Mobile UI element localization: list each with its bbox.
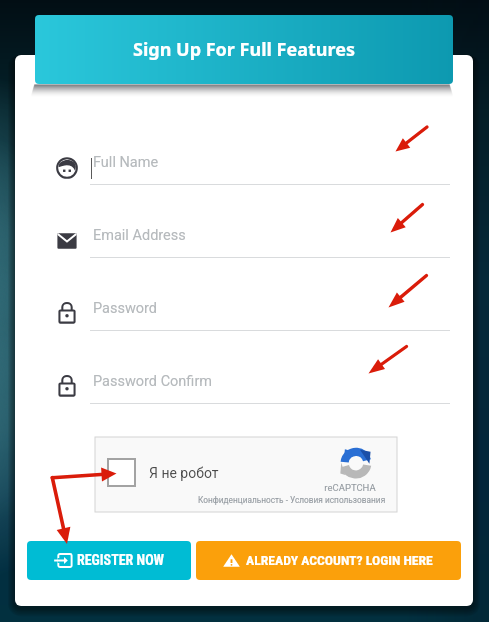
button[interactable]: ALREADY ACCOUNT? LOGIN HERE bbox=[196, 541, 461, 580]
staticText: ALREADY ACCOUNT? LOGIN HERE bbox=[246, 552, 433, 568]
staticText: Password bbox=[93, 300, 158, 317]
staticText: Я не робот bbox=[149, 465, 219, 481]
button[interactable]: I am not a robot checkbox bbox=[108, 459, 135, 486]
staticText: Password Confirm bbox=[93, 373, 213, 390]
staticText: Full Name bbox=[93, 154, 159, 171]
button[interactable]: REGISTER NOW bbox=[27, 541, 191, 580]
staticText: REGISTER NOW bbox=[77, 552, 165, 568]
staticText: Sign Up For Full Features bbox=[133, 37, 355, 62]
staticText: reCAPTCHA bbox=[324, 482, 376, 493]
staticText: Конфиденциальность - Условия использован… bbox=[198, 495, 386, 505]
staticText: Email Address bbox=[93, 227, 186, 244]
